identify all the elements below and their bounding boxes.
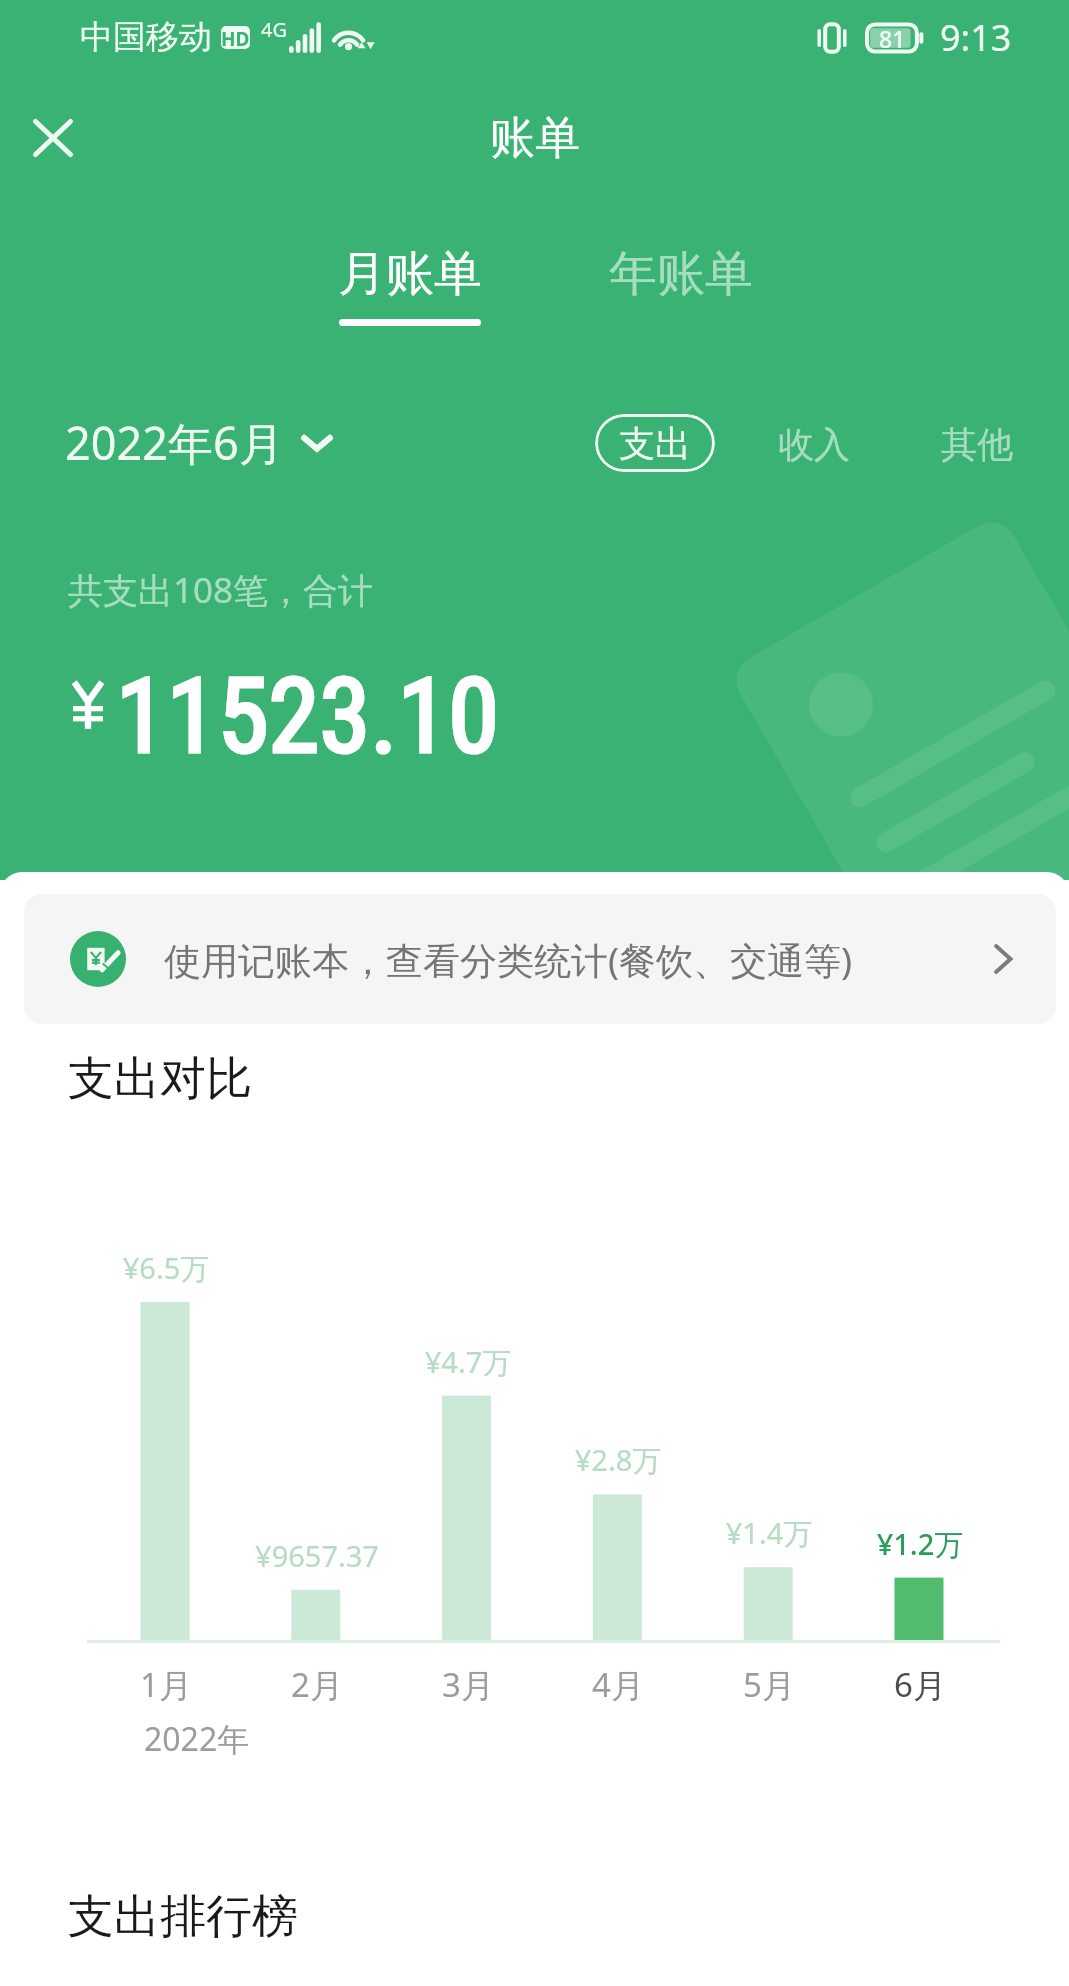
- staticText: ¥9657.37: [197, 1536, 437, 1575]
- staticText: 中国移动: [80, 16, 212, 58]
- staticText: 6月: [800, 1662, 1040, 1707]
- staticText: 收入: [778, 422, 850, 467]
- staticText: 81: [879, 23, 906, 54]
- staticText: ¥1.2万: [800, 1524, 1040, 1564]
- staticText: 账单: [490, 110, 580, 167]
- staticText: 共支出108笔，合计: [68, 566, 374, 614]
- staticText: 5月: [649, 1662, 889, 1707]
- button[interactable]: 年账单: [597, 240, 765, 330]
- staticText: ¥6.5万: [46, 1248, 286, 1288]
- staticText: 4月: [498, 1662, 738, 1707]
- staticText: 使用记账本，查看分类统计(餐饮、交通等): [164, 934, 853, 985]
- staticText: 3月: [348, 1662, 588, 1707]
- staticText: 年账单: [609, 244, 753, 304]
- staticText: 月账单: [338, 244, 482, 304]
- staticText: HD: [221, 26, 250, 49]
- staticText: 2022年6月: [65, 412, 284, 473]
- staticText: ¥4.7万: [348, 1342, 588, 1382]
- button[interactable]: 使用记账本，查看分类统计(餐饮、交通等): [24, 894, 1056, 1024]
- staticText: ¥1.4万: [649, 1513, 889, 1553]
- staticText: 2022年: [144, 1717, 250, 1761]
- staticText: 4G: [261, 16, 287, 43]
- button[interactable]: 月账单: [326, 240, 494, 330]
- staticText: 支出对比: [68, 1050, 252, 1108]
- staticText: 1月: [46, 1662, 286, 1707]
- button[interactable]: 收入: [766, 415, 862, 473]
- button[interactable]: Close: [14, 99, 92, 177]
- staticText: 支出: [619, 421, 691, 466]
- staticText: ¥2.8万: [498, 1440, 738, 1480]
- button[interactable]: Select month: [65, 412, 334, 473]
- button[interactable]: 其他: [929, 415, 1025, 473]
- button[interactable]: 支出: [595, 414, 715, 472]
- staticText: 9:13: [940, 13, 1012, 62]
- staticText: 2月: [197, 1662, 437, 1707]
- staticText: 其他: [941, 422, 1013, 467]
- staticText: 11523.10: [116, 656, 500, 777]
- staticText: 支出排行榜: [68, 1888, 298, 1946]
